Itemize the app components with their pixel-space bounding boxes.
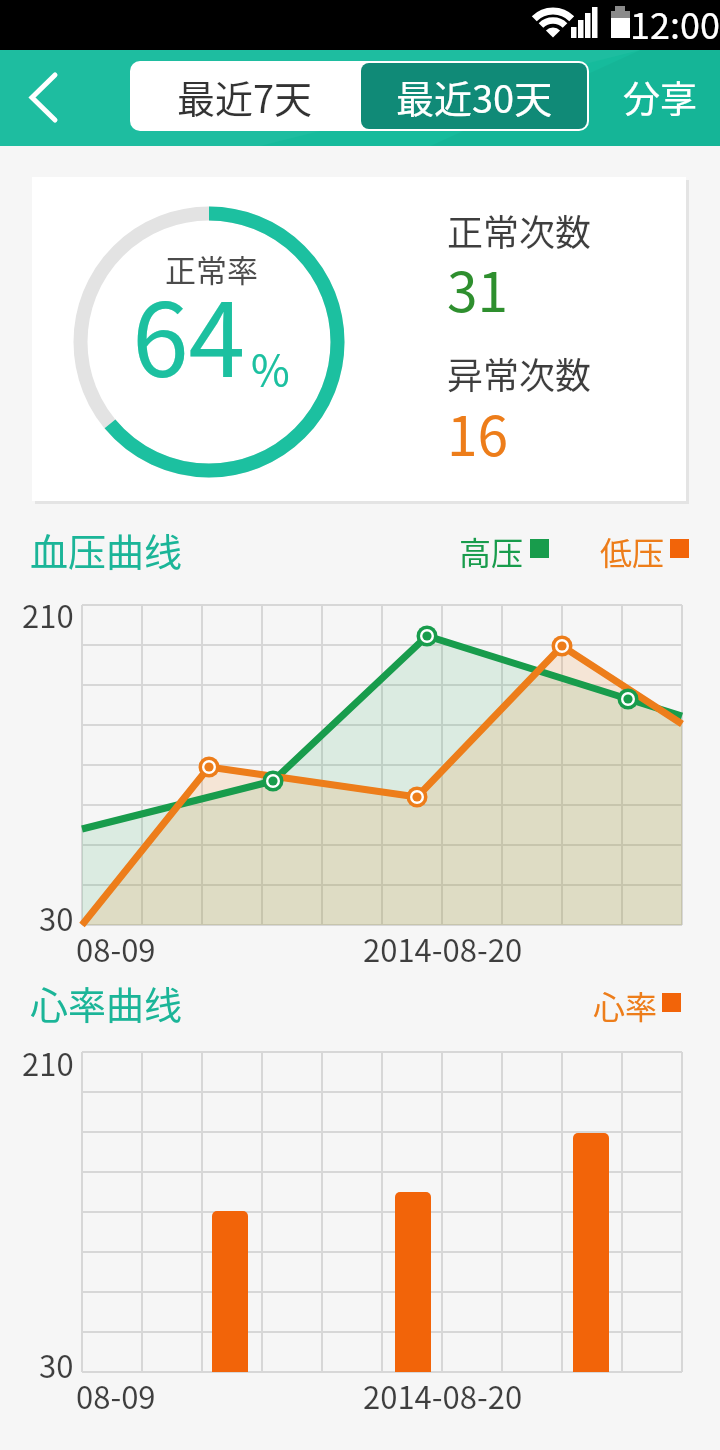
staticText: 2014-08-20: [363, 1373, 523, 1409]
staticText: 高压: [459, 528, 524, 574]
staticText: 31: [447, 248, 509, 328]
staticText: 血压曲线: [30, 522, 183, 577]
staticText: 210: [22, 1040, 74, 1076]
staticText: 异常次数: [447, 347, 592, 399]
staticText: 心率: [593, 982, 658, 1028]
staticText: 最近30天: [396, 69, 553, 124]
staticText: 正常率: [165, 246, 258, 286]
staticText: 210: [22, 592, 74, 628]
staticText: 最近7天: [177, 69, 313, 124]
staticText: 30: [39, 895, 74, 931]
staticText: 正常次数: [447, 204, 592, 256]
staticText: 低压: [600, 528, 665, 574]
staticText: 12:00: [630, 0, 720, 49]
staticText: 30: [39, 1342, 74, 1378]
staticText: 心率曲线: [30, 975, 183, 1030]
staticText: 2014-08-20: [363, 926, 523, 962]
staticText: 分享: [623, 70, 697, 124]
button[interactable]: 分享: [608, 62, 712, 132]
button[interactable]: 最近7天: [130, 61, 359, 131]
button[interactable]: 最近30天: [361, 63, 587, 129]
staticText: 08-09: [76, 1373, 156, 1418]
staticText: 08-09: [76, 926, 156, 971]
staticText: %: [251, 337, 290, 398]
staticText: 64: [132, 259, 246, 379]
button[interactable]: [0, 50, 80, 146]
staticText: 16: [447, 392, 509, 472]
